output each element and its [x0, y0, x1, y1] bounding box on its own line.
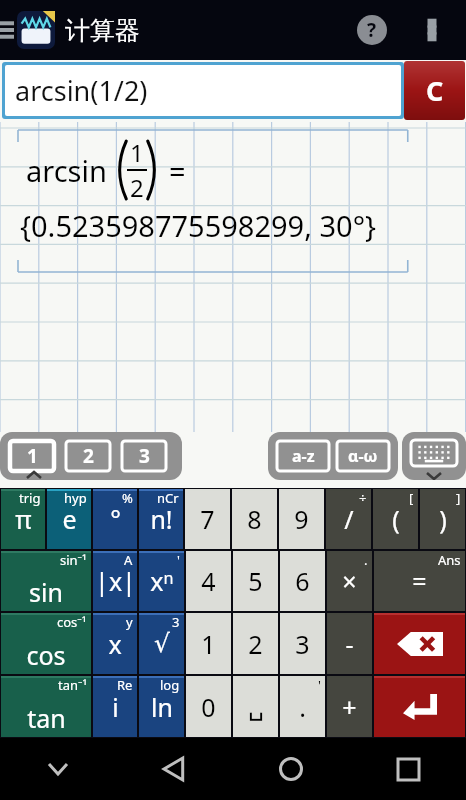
button[interactable]: sin⁻¹: [1, 551, 91, 611]
staticText: 1: [130, 136, 144, 169]
button[interactable]: [: [373, 489, 418, 549]
button[interactable]: ÷: [326, 489, 371, 549]
staticText: 计算器: [65, 15, 140, 46]
button[interactable]: tan⁻¹: [1, 676, 91, 737]
staticText: -: [345, 627, 354, 661]
staticText: =: [412, 564, 427, 598]
staticText: 2: [83, 443, 94, 469]
button[interactable]: 5: [233, 551, 278, 611]
staticText: sin: [29, 575, 63, 609]
staticText: ÷: [359, 489, 367, 507]
staticText: .: [299, 690, 306, 724]
button[interactable]: %: [93, 489, 137, 549]
button[interactable]: Hide keyboard: [36, 747, 80, 791]
button[interactable]: Re: [93, 676, 137, 737]
button[interactable]: log: [139, 676, 184, 737]
button[interactable]: 3: [280, 613, 325, 674]
button[interactable]: 8: [232, 489, 277, 549]
button[interactable]: y: [93, 613, 137, 674]
button[interactable]: Recents: [386, 747, 430, 791]
staticText: 9: [294, 502, 309, 536]
button[interactable]: a-z: [277, 441, 329, 471]
button[interactable]: 2: [66, 441, 110, 471]
staticText: ': [318, 676, 321, 694]
staticText: cos: [26, 638, 66, 672]
staticText: nCr: [157, 489, 179, 507]
staticText: (: [392, 502, 400, 536]
staticText: n!: [150, 502, 173, 536]
staticText: α-ω: [348, 445, 378, 467]
button[interactable]: C: [404, 61, 465, 120]
button[interactable]: ': [280, 676, 325, 737]
staticText: tan⁻¹: [58, 676, 87, 694]
staticText: A: [124, 551, 133, 569]
button[interactable]: 7: [185, 489, 230, 549]
staticText: 8: [247, 502, 262, 536]
button[interactable]: Backspace: [374, 613, 465, 674]
staticText: %: [122, 489, 133, 507]
staticText: ␣: [248, 692, 264, 721]
button[interactable]: 3: [139, 613, 184, 674]
staticText: a-z: [292, 445, 315, 467]
staticText: [: [409, 489, 414, 507]
button[interactable]: cos⁻¹: [1, 613, 91, 674]
staticText: arcsin: [26, 151, 107, 190]
staticText: °: [110, 502, 121, 536]
button[interactable]: Keyboard: [409, 438, 459, 468]
staticText: =: [169, 151, 186, 190]
button[interactable]: ': [139, 551, 184, 611]
staticText: 6: [295, 564, 310, 598]
button[interactable]: Help: [354, 12, 390, 48]
staticText: π: [15, 502, 32, 536]
staticText: 3: [172, 613, 180, 631]
staticText: ]: [456, 489, 461, 507]
staticText: 1: [27, 443, 38, 469]
staticText: cos⁻¹: [57, 613, 87, 631]
button[interactable]: Home: [269, 747, 313, 791]
button[interactable]: .: [327, 551, 372, 611]
button[interactable]: +: [327, 676, 372, 737]
staticText: +: [342, 690, 357, 724]
button[interactable]: nCr: [139, 489, 183, 549]
staticText: 2: [130, 171, 144, 204]
staticText: 4: [201, 564, 216, 598]
staticText: 1: [201, 627, 216, 661]
button[interactable]: ]: [420, 489, 465, 549]
staticText: C: [426, 72, 444, 109]
button[interactable]: 6: [280, 551, 325, 611]
button[interactable]: 1: [10, 441, 54, 471]
staticText: hyp: [64, 489, 87, 507]
staticText: 2: [248, 627, 263, 661]
button[interactable]: hyp: [47, 489, 91, 549]
staticText: log: [160, 676, 180, 694]
button[interactable]: Enter: [374, 676, 465, 737]
staticText: trig: [19, 489, 41, 507]
staticText: x: [108, 627, 122, 661]
button[interactable]: 3: [122, 441, 166, 471]
button[interactable]: A: [93, 551, 137, 611]
staticText: ?: [367, 17, 377, 43]
button[interactable]: 4: [186, 551, 231, 611]
button[interactable]: 1: [186, 613, 231, 674]
staticText: .: [364, 551, 368, 569]
button[interactable]: 0: [186, 676, 231, 737]
button[interactable]: -: [327, 613, 372, 674]
staticText: arcsin(1/2): [15, 72, 148, 109]
button[interactable]: ␣: [233, 676, 278, 737]
staticText: 0: [201, 690, 216, 724]
staticText: tan: [27, 701, 66, 735]
button[interactable]: α-ω: [337, 441, 389, 471]
button[interactable]: Ans: [374, 551, 465, 611]
button[interactable]: Back: [153, 747, 197, 791]
button[interactable]: More options: [412, 10, 452, 50]
staticText: ': [177, 551, 180, 569]
button[interactable]: 9: [279, 489, 324, 549]
staticText: {0.523598775598299, 30°}: [20, 206, 377, 245]
staticText: ): [439, 502, 447, 536]
button[interactable]: trig: [1, 489, 45, 549]
button[interactable]: 2: [233, 613, 278, 674]
staticText: i: [112, 690, 119, 724]
staticText: |x|: [95, 564, 136, 598]
button[interactable]: arcsin(1/2): [5, 65, 401, 116]
staticText: Re: [117, 676, 133, 694]
